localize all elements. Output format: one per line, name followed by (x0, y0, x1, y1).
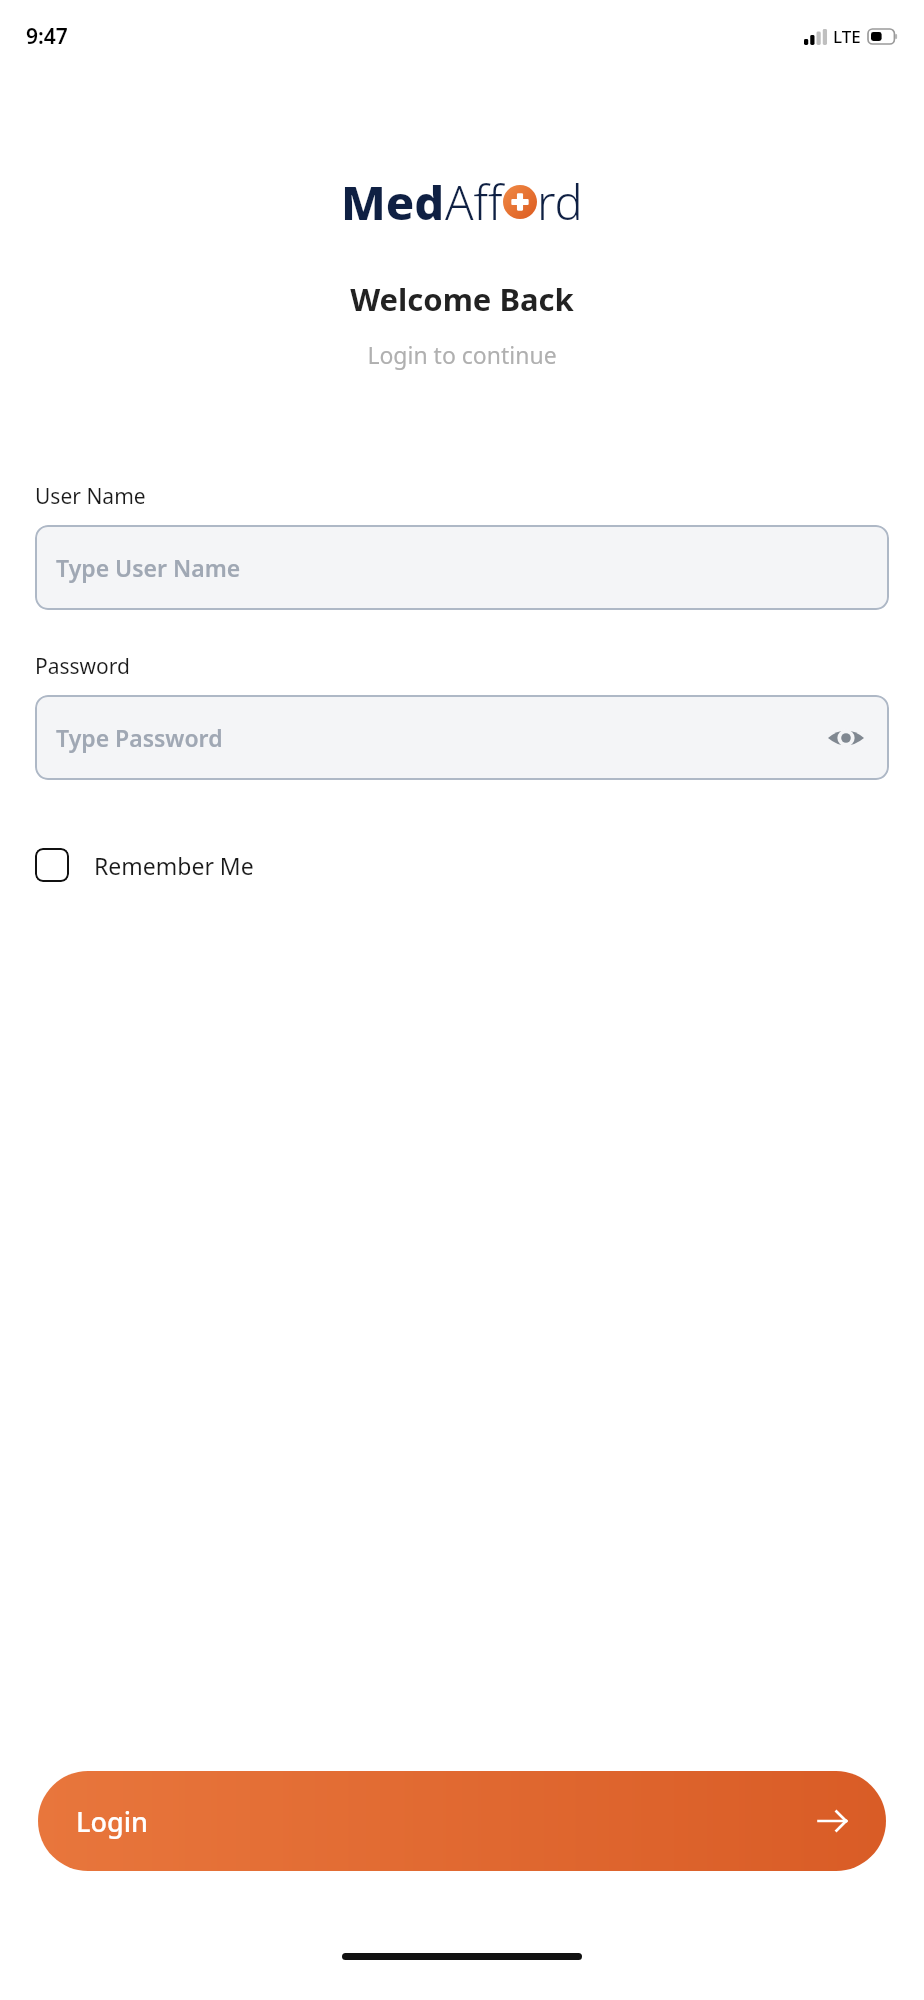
staticText: User Name (35, 482, 146, 511)
button[interactable]: Type User Name (35, 525, 889, 610)
button[interactable]: Login (38, 1771, 886, 1871)
staticText: rd (537, 170, 583, 234)
staticText: Type User Name (56, 552, 241, 583)
staticText: Remember Me (94, 850, 254, 881)
staticText: 9:47 (26, 22, 68, 51)
staticText: Type Password (56, 722, 223, 753)
staticText: Login (76, 1803, 148, 1840)
staticText: LTE (833, 25, 861, 48)
staticText: Login to continue (0, 339, 924, 370)
button[interactable]: Type Password (35, 695, 889, 780)
button[interactable]: Remember Me (35, 842, 254, 888)
staticText: Welcome Back (0, 278, 924, 320)
button[interactable]: Show password (824, 716, 868, 760)
staticText: Med (341, 170, 445, 234)
staticText: Password (35, 652, 130, 681)
staticText: Aff (445, 170, 503, 234)
